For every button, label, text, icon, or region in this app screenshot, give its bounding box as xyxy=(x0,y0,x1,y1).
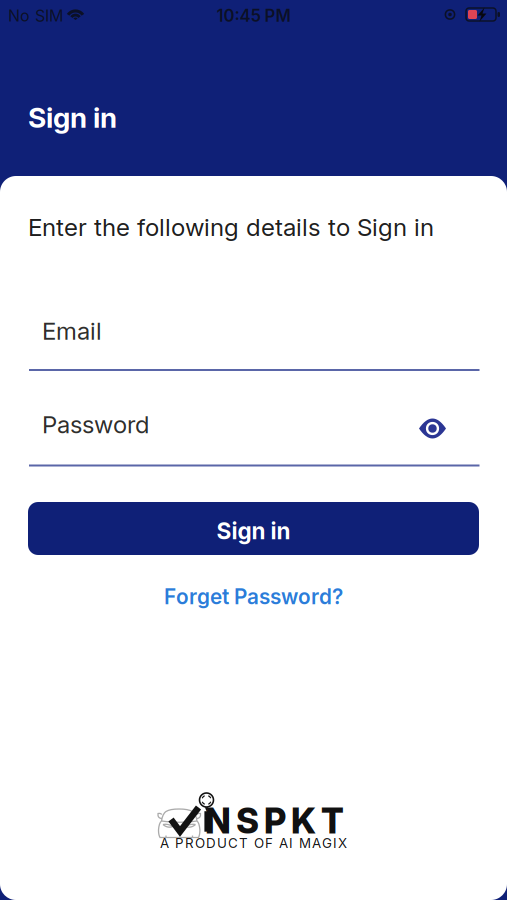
button[interactable]: Forget Password? xyxy=(0,584,507,609)
button[interactable]: Show password xyxy=(410,410,454,446)
staticText: Sign in xyxy=(216,517,290,545)
staticText: Enter the following details to Sign in xyxy=(28,212,434,242)
staticText: No SIM xyxy=(8,6,63,25)
staticText: A P R O D U C T O F A I M A G I X xyxy=(160,835,347,851)
textField[interactable]: Password xyxy=(42,410,402,439)
staticText: Sign in xyxy=(28,100,117,134)
staticText: Password xyxy=(42,410,149,439)
staticText: Email xyxy=(42,316,102,345)
staticText: N S P K T xyxy=(205,800,344,842)
staticText: 10:45 PM xyxy=(216,5,290,26)
staticText: Forget Password? xyxy=(164,584,343,609)
textField[interactable]: Email xyxy=(42,316,472,345)
button[interactable]: Sign in xyxy=(28,502,479,555)
